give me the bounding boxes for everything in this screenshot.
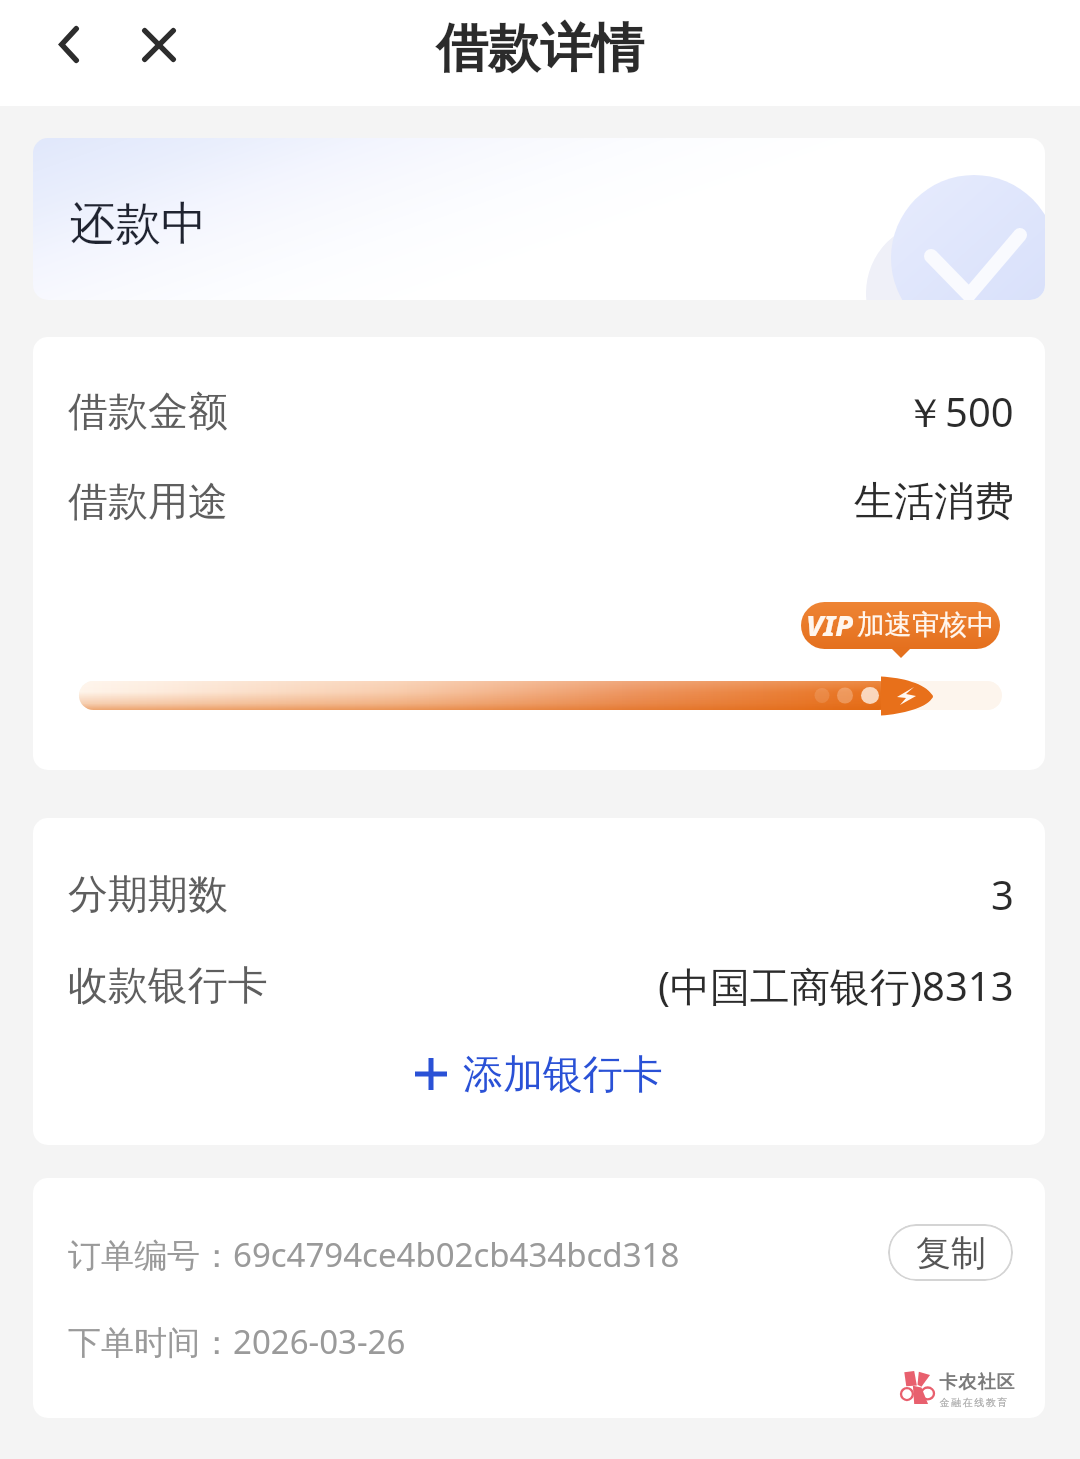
staticText: 加速审核中	[857, 608, 995, 643]
staticText: 借款详情	[436, 16, 644, 82]
staticText: 卡农社区	[939, 1371, 1016, 1394]
staticText: 复制	[916, 1231, 986, 1275]
staticText: 订单编号：69c4794ce4b02cb434bcd318	[68, 1232, 680, 1277]
staticText: 添加银行卡	[463, 1049, 663, 1099]
button[interactable]: 还款中	[33, 138, 1045, 300]
staticText: 还款中	[70, 195, 207, 252]
button[interactable]: 添加银行卡	[33, 1044, 1045, 1104]
button[interactable]: 复制	[888, 1224, 1013, 1281]
button[interactable]: Close	[128, 6, 190, 84]
staticText: 借款金额	[68, 386, 228, 436]
staticText: 金融在线教育	[939, 1396, 1008, 1409]
button[interactable]: Back	[39, 5, 99, 83]
staticText: 下单时间：2026-03-26	[68, 1319, 406, 1364]
staticText: 3	[991, 867, 1014, 921]
staticText: ￥500	[905, 384, 1014, 439]
staticText: 生活消费	[854, 476, 1014, 526]
staticText: 分期期数	[68, 869, 228, 919]
staticText: 借款用途	[68, 476, 228, 526]
staticText: (中国工商银行)8313	[658, 958, 1014, 1013]
staticText: 收款银行卡	[68, 960, 268, 1010]
staticText: VIP	[806, 605, 854, 644]
